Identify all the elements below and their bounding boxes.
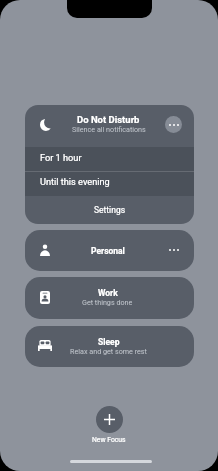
button[interactable]: More options	[165, 241, 182, 258]
button[interactable]: Settings	[25, 196, 194, 224]
staticText: Get things done	[82, 298, 133, 306]
staticText: Silence all notifications	[72, 125, 146, 133]
staticText: Personal	[91, 246, 125, 256]
staticText: Until this evening	[40, 176, 110, 187]
button[interactable]: Sleep	[25, 326, 194, 367]
staticText: New Focus	[92, 436, 126, 444]
button[interactable]: Work	[25, 277, 194, 319]
staticText: For 1 hour	[40, 152, 82, 163]
button[interactable]: For 1 hour	[25, 147, 194, 171]
staticText: Relax and get some rest	[70, 347, 147, 355]
staticText: Sleep	[98, 337, 120, 347]
staticText: Do Not Disturb	[77, 114, 140, 125]
button[interactable]: Until this evening	[25, 171, 194, 196]
button[interactable]: More options	[165, 116, 182, 133]
button[interactable]: Do Not Disturb	[25, 105, 194, 147]
staticText: Work	[98, 288, 118, 298]
button[interactable]: Personal	[25, 230, 194, 271]
button[interactable]: New Focus	[96, 406, 123, 433]
staticText: Settings	[94, 205, 126, 215]
